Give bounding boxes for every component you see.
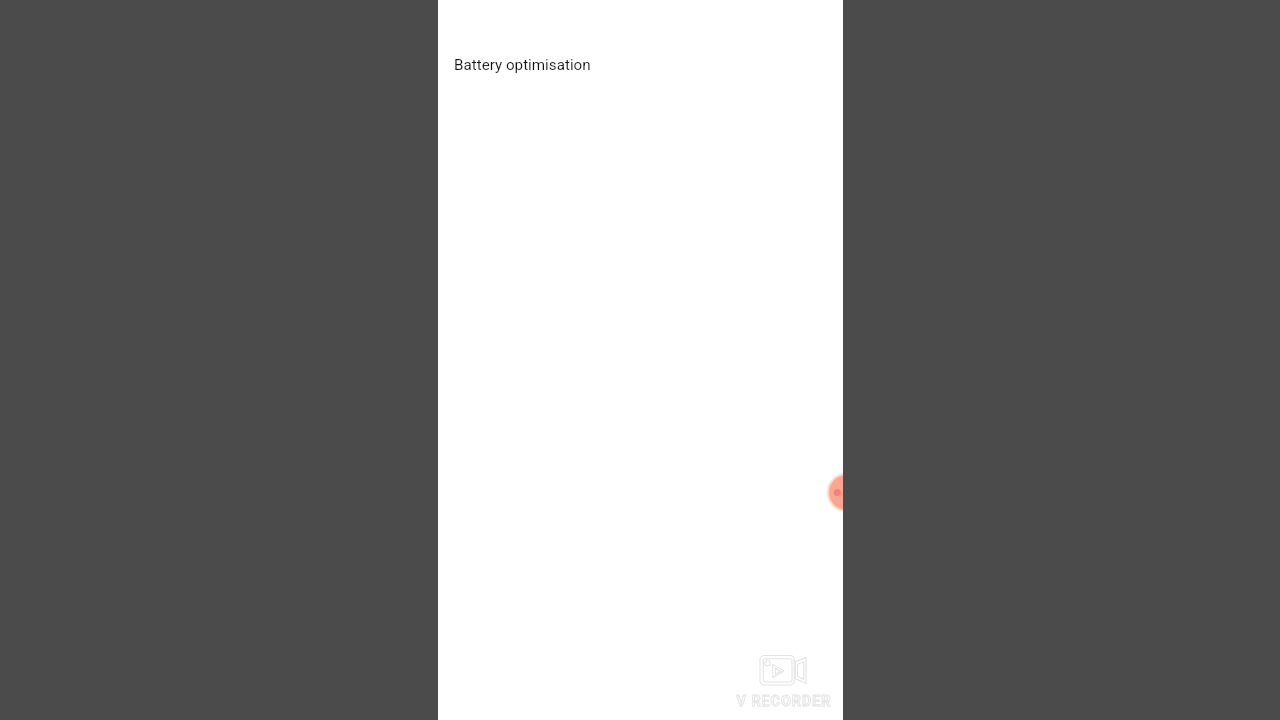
staticText: V RECORDER <box>734 693 834 710</box>
staticText: Battery optimisation <box>454 56 591 74</box>
button[interactable]: Record <box>824 470 843 515</box>
